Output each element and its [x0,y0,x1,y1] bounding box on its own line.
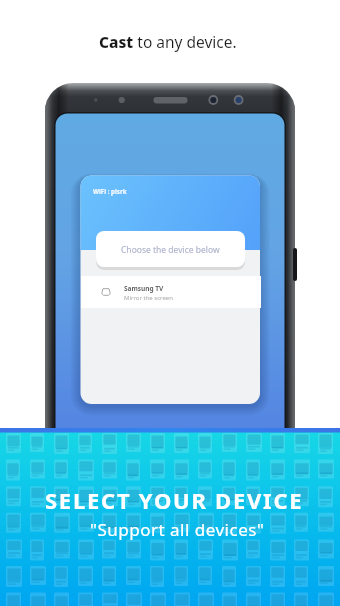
staticText: Choose the device below [121,244,220,256]
staticText: Cast to any device. [99,31,237,52]
staticText: Mirror the screen [124,294,173,302]
button[interactable]: Samsung TV [81,276,261,308]
button[interactable]: Choose the device below [96,231,245,267]
staticText: "Support all devices" [90,518,265,541]
staticText: Samsung TV [124,284,164,293]
staticText: WiFi : plsrk [93,187,127,195]
staticText: SELECT YOUR DEVICE [45,485,304,515]
